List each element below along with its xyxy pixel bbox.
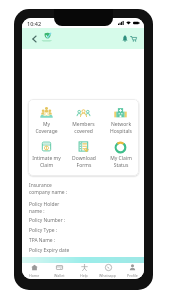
button[interactable]: Help: [72, 263, 96, 279]
button[interactable]: Notifications: [122, 35, 128, 42]
staticText: TPA Name :: [29, 237, 56, 244]
staticText: My Coverage: [35, 121, 58, 134]
button[interactable]: My Claim Status: [102, 137, 139, 172]
button[interactable]: Back: [28, 33, 37, 45]
button[interactable]: My Coverage: [28, 103, 65, 137]
staticText: Insurance company name :: [29, 182, 68, 195]
button[interactable]: Network Hospitals: [102, 103, 139, 137]
button[interactable]: Cart: [130, 35, 137, 42]
staticText: 10:42: [27, 20, 42, 27]
button[interactable]: Profile: [120, 263, 144, 279]
staticText: Help: [80, 273, 88, 278]
staticText: Whatsapp: [99, 273, 117, 278]
staticText: Policy Expiry date: [29, 247, 70, 254]
button[interactable]: Home: [22, 263, 47, 279]
staticText: Policy Number :: [29, 217, 66, 224]
staticText: Policy Type :: [29, 227, 58, 234]
staticText: Wallet: [54, 273, 65, 278]
staticText: Members covered: [72, 121, 95, 134]
button[interactable]: Download Forms: [65, 137, 102, 172]
button[interactable]: Intimate my Claim: [28, 137, 65, 172]
staticText: My Claim Status: [110, 155, 132, 168]
staticText: Policy Holder name :: [29, 201, 60, 214]
staticText: Profile: [127, 273, 138, 278]
button[interactable]: Wallet: [47, 263, 72, 279]
staticText: Intimate my Claim: [32, 155, 61, 168]
staticText: Download Forms: [72, 155, 96, 168]
staticText: Network Hospitals: [110, 121, 132, 134]
button[interactable]: Whatsapp: [96, 263, 120, 279]
staticText: Home: [29, 273, 40, 278]
button[interactable]: Members covered: [65, 103, 102, 137]
